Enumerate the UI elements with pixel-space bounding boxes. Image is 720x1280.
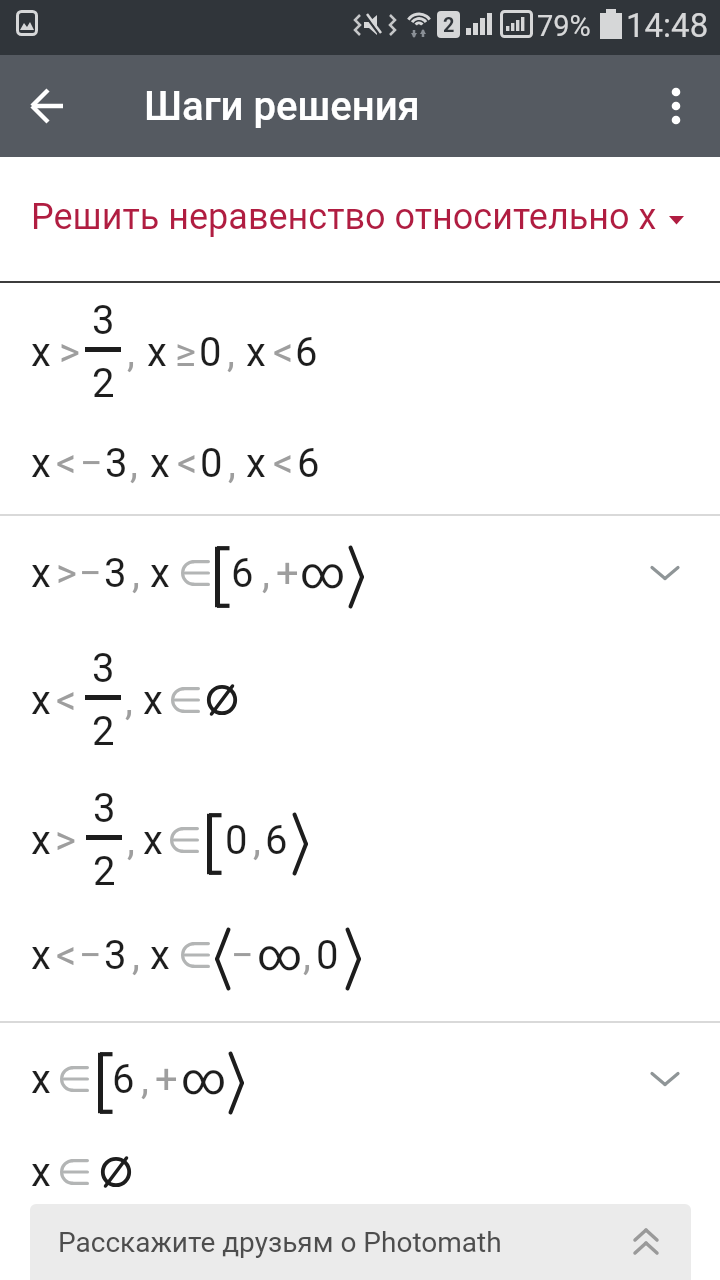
staticText: x <box>31 932 51 979</box>
staticText: > <box>59 329 80 376</box>
staticText: 79% <box>537 9 591 43</box>
staticText: > <box>56 550 77 597</box>
staticText: ∞ <box>300 547 346 599</box>
staticText: 2 <box>92 360 115 407</box>
staticText: x <box>150 550 170 597</box>
staticText: 2 <box>93 848 116 895</box>
staticText: 3 <box>105 440 128 487</box>
staticText: − <box>79 932 102 979</box>
staticText: < <box>56 440 77 487</box>
staticText: 2 <box>92 708 115 755</box>
staticText: 6 <box>297 440 320 487</box>
staticText: , <box>132 550 140 597</box>
staticText: < <box>177 440 198 487</box>
staticText: < <box>56 677 77 724</box>
staticText: x <box>143 677 163 724</box>
staticText: ∞ <box>181 1053 227 1105</box>
staticText: x <box>31 550 51 597</box>
button[interactable]: x <box>0 1019 720 1139</box>
staticText: + <box>276 550 299 597</box>
staticText: , <box>228 440 236 487</box>
staticText: , <box>125 677 133 724</box>
staticText: x <box>31 440 51 487</box>
button[interactable] <box>652 82 700 130</box>
staticText: Шаги решения <box>144 83 420 130</box>
staticText: ∞ <box>257 929 303 981</box>
staticText: 3 <box>92 297 115 344</box>
staticText: x <box>31 329 51 376</box>
staticText: , <box>262 550 270 597</box>
staticText: x <box>31 1056 51 1103</box>
staticText: + <box>155 1056 178 1103</box>
staticText: − <box>80 440 103 487</box>
staticText: < <box>273 440 294 487</box>
button[interactable] <box>16 74 80 138</box>
staticText: < <box>56 932 77 979</box>
button[interactable]: x <box>0 513 720 633</box>
staticText: 14:48 <box>626 6 709 45</box>
staticText: 6 <box>265 817 288 864</box>
staticText: − <box>231 932 254 979</box>
staticText: Расскажите друзьям о Photomath <box>58 1226 502 1259</box>
staticText: , <box>132 932 140 979</box>
staticText: 6 <box>112 1056 135 1103</box>
staticText: 3 <box>104 550 127 597</box>
staticText: , <box>227 329 235 376</box>
staticText: , <box>127 817 135 864</box>
staticText: Решить неравенство относительно x <box>31 196 657 238</box>
staticText: x <box>147 329 167 376</box>
staticText: x <box>31 1149 51 1196</box>
staticText: ≥ <box>175 329 196 376</box>
staticText: x <box>31 817 51 864</box>
button[interactable]: Расскажите друзьям о Photomath <box>30 1204 691 1280</box>
staticText: , <box>127 329 135 376</box>
staticText: > <box>55 817 76 864</box>
staticText: , <box>253 817 261 864</box>
staticText: x <box>143 817 163 864</box>
staticText: x <box>150 932 170 979</box>
staticText: , <box>303 932 311 979</box>
staticText: , <box>130 440 138 487</box>
staticText: 3 <box>104 932 127 979</box>
staticText: x <box>150 440 170 487</box>
staticText: 0 <box>199 329 222 376</box>
staticText: < <box>273 329 294 376</box>
staticText: 0 <box>225 817 248 864</box>
staticText: − <box>79 550 102 597</box>
staticText: 3 <box>93 785 116 832</box>
staticText: x <box>246 329 266 376</box>
staticText: 6 <box>231 550 254 597</box>
staticText: 0 <box>316 932 339 979</box>
staticText: 6 <box>295 329 318 376</box>
staticText: x <box>246 440 266 487</box>
button[interactable]: Решить неравенство относительно x <box>0 185 720 249</box>
staticText: 3 <box>92 645 115 692</box>
staticText: 2 <box>443 13 455 36</box>
staticText: x <box>31 677 51 724</box>
staticText: 0 <box>200 440 223 487</box>
staticText: , <box>141 1056 149 1103</box>
